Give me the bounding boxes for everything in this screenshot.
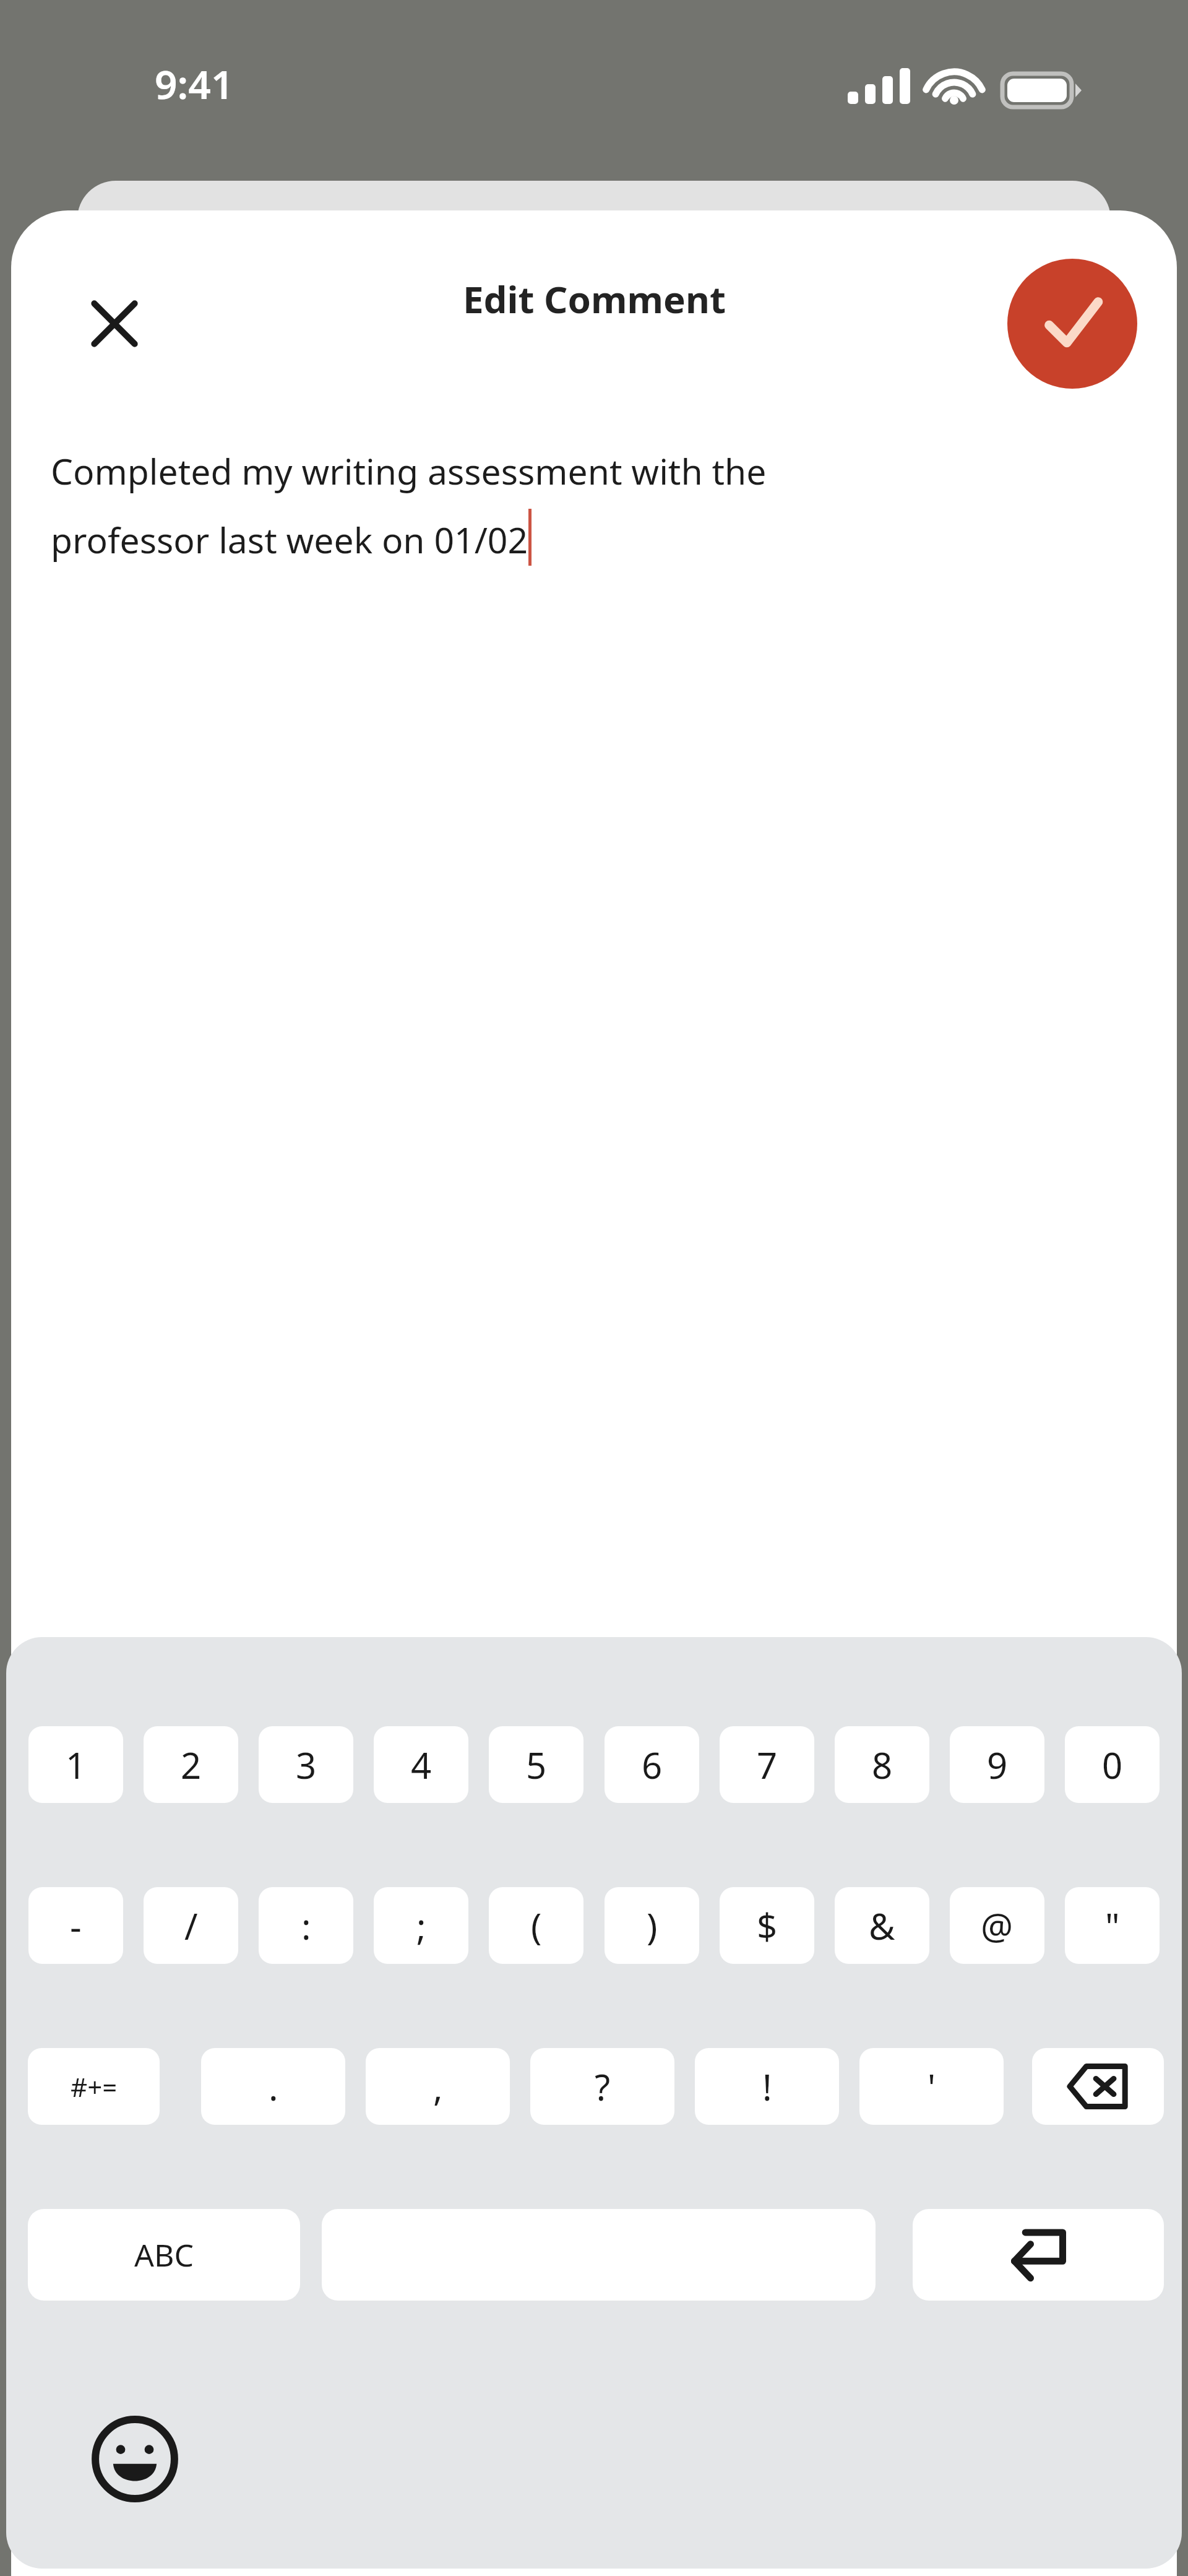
button[interactable]: 1	[28, 1726, 123, 1803]
staticText: 7	[757, 1740, 778, 1789]
staticText: !	[762, 2062, 772, 2111]
staticText: professor last week on 01/02	[51, 516, 528, 564]
button[interactable]: #+=	[28, 2048, 160, 2125]
staticText: Edit Comment	[463, 274, 726, 324]
staticText: 4	[411, 1740, 432, 1789]
button[interactable]: )	[605, 1887, 699, 1964]
button[interactable]: 7	[720, 1726, 814, 1803]
button[interactable]: Emoji keyboard	[79, 2403, 191, 2515]
button[interactable]: '	[859, 2048, 1004, 2125]
button[interactable]: $	[720, 1887, 814, 1964]
staticText: #+=	[71, 2069, 118, 2104]
button[interactable]: 4	[374, 1726, 468, 1803]
staticText: 5	[526, 1740, 547, 1789]
staticText: 3	[296, 1740, 317, 1789]
staticText: 0	[1102, 1740, 1123, 1789]
button[interactable]: &	[835, 1887, 929, 1964]
button[interactable]: ?	[530, 2048, 674, 2125]
staticText: 1	[66, 1740, 87, 1789]
staticText: /	[184, 1901, 198, 1950]
staticText: Completed my writing assessment with the	[51, 447, 767, 495]
staticText: "	[1105, 1901, 1120, 1950]
staticText: (	[531, 1901, 542, 1950]
button[interactable]: Backspace	[1032, 2048, 1164, 2125]
staticText: ABC	[134, 2234, 194, 2276]
button[interactable]: (	[489, 1887, 583, 1964]
button[interactable]: 9	[950, 1726, 1044, 1803]
staticText: :	[301, 1901, 311, 1950]
button[interactable]: 3	[259, 1726, 353, 1803]
staticText: $	[757, 1901, 778, 1950]
button[interactable]: Close	[49, 259, 179, 389]
button[interactable]: .	[201, 2048, 345, 2125]
button[interactable]: Completed my writing assessment with the	[51, 447, 767, 568]
button[interactable]: 2	[144, 1726, 238, 1803]
button[interactable]: !	[695, 2048, 839, 2125]
staticText: .	[269, 2062, 278, 2111]
button[interactable]: @	[950, 1887, 1044, 1964]
staticText: )	[647, 1901, 658, 1950]
button[interactable]: -	[28, 1887, 123, 1964]
button[interactable]: :	[259, 1887, 353, 1964]
staticText: 8	[872, 1740, 893, 1789]
staticText: ?	[595, 2062, 611, 2111]
staticText: @	[981, 1901, 1014, 1950]
button[interactable]: ,	[366, 2048, 510, 2125]
button[interactable]: 6	[605, 1726, 699, 1803]
staticText: -	[70, 1901, 82, 1950]
staticText: ;	[416, 1901, 426, 1950]
staticText: ,	[433, 2062, 443, 2111]
staticText: 6	[642, 1740, 663, 1789]
button[interactable]: 8	[835, 1726, 929, 1803]
button[interactable]: 0	[1065, 1726, 1160, 1803]
button[interactable]: ;	[374, 1887, 468, 1964]
button[interactable]: ABC	[28, 2209, 300, 2301]
button[interactable]: Save comment	[1007, 259, 1137, 389]
staticText: 9	[987, 1740, 1008, 1789]
button[interactable]: "	[1065, 1887, 1160, 1964]
staticText: &	[869, 1901, 895, 1950]
button[interactable]: 5	[489, 1726, 583, 1803]
staticText: 9:41	[155, 57, 234, 111]
button[interactable]: /	[144, 1887, 238, 1964]
staticText: 2	[181, 1740, 202, 1789]
staticText: '	[928, 2062, 936, 2111]
button[interactable]: Return	[913, 2209, 1164, 2301]
